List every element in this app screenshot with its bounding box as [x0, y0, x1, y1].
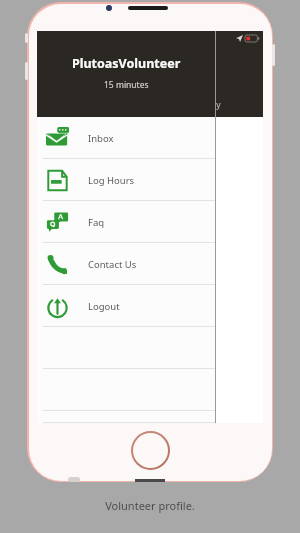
staticText: PlutoasVolunteer [72, 55, 181, 72]
button[interactable] [37, 327, 215, 369]
button[interactable]: Faq [37, 201, 215, 243]
staticText: Log Hours [88, 174, 135, 187]
button[interactable] [37, 369, 215, 411]
staticText: Logout [88, 300, 120, 313]
button[interactable] [37, 411, 215, 423]
button[interactable]: Inbox [37, 117, 215, 159]
button[interactable]: Contact Us [37, 243, 215, 285]
button[interactable]: History [150, 95, 263, 117]
staticText: Inbox [88, 132, 114, 145]
staticText: Volunteer profile. [105, 498, 195, 513]
button[interactable]: Logout [37, 285, 215, 327]
staticText: History [192, 99, 221, 111]
staticText: Status [47, 155, 71, 166]
staticText: 15 minutes [104, 79, 149, 91]
staticText: Faq [88, 216, 105, 229]
button[interactable] [48, 129, 70, 151]
staticText: Contact Us [88, 258, 137, 271]
button[interactable]: Log Hours [37, 159, 215, 201]
